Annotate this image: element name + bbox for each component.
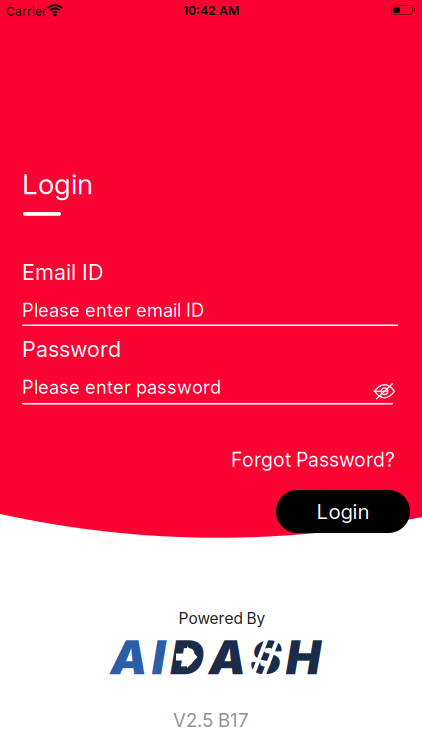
staticText: 10:42 AM (183, 3, 239, 18)
staticText: Please enter email ID (22, 299, 204, 321)
staticText: Forgot Password? (231, 448, 395, 471)
button[interactable]: Email ID text field (22, 299, 204, 321)
staticText: Please enter password (22, 376, 221, 398)
button[interactable]: Forgot Password? (231, 448, 395, 471)
staticText: Carrier (6, 4, 47, 18)
button[interactable]: Show password (374, 383, 395, 399)
staticText: Login (22, 167, 93, 201)
staticText: V2.5 B17 (173, 709, 249, 731)
staticText: S (250, 629, 281, 686)
staticText: D (170, 629, 204, 686)
button[interactable]: Login (276, 490, 410, 533)
button[interactable]: Password text field (22, 376, 221, 398)
staticText: A (110, 629, 147, 686)
staticText: Powered By (178, 609, 265, 628)
staticText: Login (316, 499, 369, 524)
staticText: H (286, 629, 321, 686)
staticText: A (209, 629, 246, 686)
staticText: Password (22, 336, 121, 362)
staticText: I (152, 629, 166, 686)
staticText: Email ID (22, 259, 104, 285)
